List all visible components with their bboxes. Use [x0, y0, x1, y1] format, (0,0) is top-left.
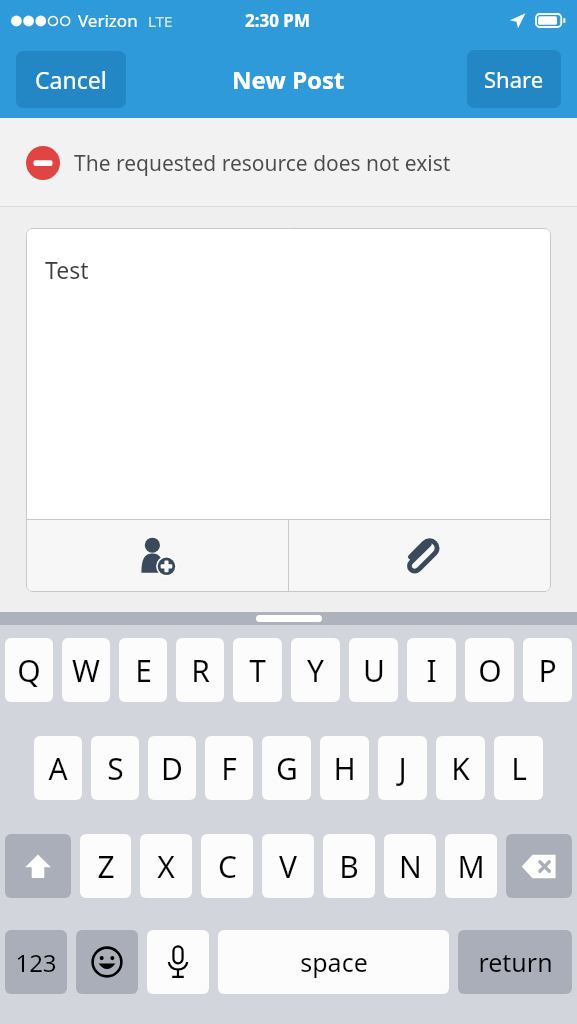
- staticText: Verizon: [78, 9, 138, 32]
- button[interactable]: O: [465, 638, 514, 702]
- staticText: U: [363, 650, 385, 691]
- button[interactable]: C: [201, 834, 253, 898]
- staticText: The requested resource does not exist: [74, 149, 451, 178]
- button[interactable]: U: [349, 638, 398, 702]
- button[interactable]: H: [320, 736, 369, 800]
- staticText: Y: [307, 650, 324, 691]
- staticText: Q: [17, 650, 41, 691]
- button[interactable]: return: [458, 930, 572, 994]
- button[interactable]: K: [436, 736, 485, 800]
- staticText: Cancel: [35, 64, 107, 95]
- staticText: E: [135, 650, 152, 691]
- staticText: L: [511, 748, 527, 789]
- staticText: I: [426, 650, 437, 691]
- button[interactable]: Add person: [26, 520, 288, 592]
- staticText: New Post: [232, 63, 345, 96]
- button[interactable]: X: [140, 834, 192, 898]
- staticText: B: [339, 846, 359, 887]
- staticText: S: [107, 748, 124, 789]
- button[interactable]: W: [62, 638, 110, 702]
- staticText: 2:30 PM: [245, 9, 310, 32]
- button[interactable]: N: [384, 834, 436, 898]
- button[interactable]: B: [323, 834, 375, 898]
- staticText: W: [72, 650, 100, 691]
- button[interactable]: M: [445, 834, 497, 898]
- button[interactable]: Share: [467, 50, 561, 108]
- staticText: J: [398, 748, 407, 789]
- button[interactable]: D: [148, 736, 196, 800]
- button[interactable]: 123: [5, 930, 67, 994]
- staticText: Test: [45, 254, 89, 285]
- button[interactable]: Cancel: [16, 51, 126, 108]
- staticText: X: [157, 846, 175, 887]
- button[interactable]: G: [262, 736, 311, 800]
- button[interactable]: V: [262, 834, 314, 898]
- staticText: F: [221, 748, 237, 789]
- button[interactable]: Dictation: [147, 930, 209, 994]
- button[interactable]: A: [34, 736, 82, 800]
- button[interactable]: P: [523, 638, 572, 702]
- button[interactable]: T: [233, 638, 282, 702]
- staticText: K: [451, 748, 470, 789]
- staticText: P: [538, 650, 557, 691]
- button[interactable]: Backspace: [506, 834, 572, 898]
- button[interactable]: L: [494, 736, 543, 800]
- button[interactable]: Attach file: [289, 520, 551, 592]
- staticText: 123: [15, 946, 57, 979]
- button[interactable]: R: [176, 638, 224, 702]
- button[interactable]: F: [205, 736, 253, 800]
- staticText: C: [218, 846, 237, 887]
- staticText: space: [300, 945, 368, 979]
- staticText: V: [279, 846, 297, 887]
- staticText: R: [191, 650, 210, 691]
- staticText: T: [249, 650, 266, 691]
- button[interactable]: Y: [291, 638, 340, 702]
- button[interactable]: Emoji: [76, 930, 138, 994]
- button[interactable]: space: [218, 930, 449, 994]
- button[interactable]: I: [407, 638, 456, 702]
- staticText: D: [161, 748, 183, 789]
- staticText: N: [399, 846, 422, 887]
- button[interactable]: Z: [80, 834, 131, 898]
- button[interactable]: J: [378, 736, 427, 800]
- staticText: M: [457, 846, 485, 887]
- button[interactable]: Test: [26, 228, 551, 519]
- staticText: O: [478, 650, 502, 691]
- staticText: return: [478, 945, 553, 979]
- button[interactable]: E: [119, 638, 167, 702]
- button[interactable]: S: [91, 736, 139, 800]
- staticText: A: [48, 748, 68, 789]
- staticText: H: [333, 748, 356, 789]
- button[interactable]: Q: [5, 638, 53, 702]
- button[interactable]: Shift: [5, 834, 71, 898]
- staticText: Share: [484, 64, 544, 94]
- staticText: G: [276, 748, 298, 789]
- staticText: LTE: [148, 11, 173, 31]
- staticText: Z: [97, 846, 115, 887]
